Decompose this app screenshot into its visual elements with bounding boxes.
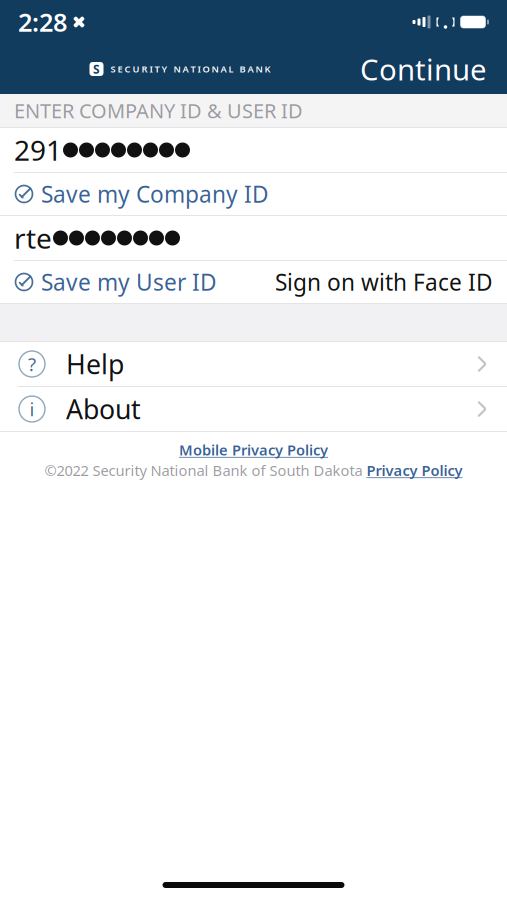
staticText: 2:28	[18, 5, 67, 39]
staticText: Save my User ID	[41, 267, 217, 297]
staticText: rte	[14, 219, 52, 257]
staticText: ENTER COMPANY ID & USER ID	[14, 97, 303, 124]
button[interactable]: Save my User ID	[0, 257, 225, 307]
staticText: Sign on with Face ID	[275, 267, 493, 297]
button[interactable]: i	[0, 387, 507, 431]
staticText: S E C U R I T Y N A T I O N A L B A N K	[110, 63, 270, 75]
button[interactable]: Continue	[350, 43, 497, 94]
staticText: Mobile Privacy Policy	[179, 440, 328, 459]
staticText: i	[29, 397, 34, 421]
staticText: ?	[28, 352, 36, 376]
staticText: Privacy Policy	[366, 460, 462, 480]
staticText: Help	[66, 346, 124, 382]
staticText: Continue	[360, 49, 487, 88]
staticText: Save my Company ID	[41, 179, 269, 209]
button[interactable]: Save my Company ID	[0, 169, 277, 219]
staticText: About	[66, 391, 141, 427]
button[interactable]: Mobile Privacy Policy	[179, 440, 328, 459]
staticText: S	[93, 61, 100, 77]
staticText: 291	[14, 131, 62, 169]
button[interactable]: Sign on with Face ID	[267, 257, 507, 307]
button[interactable]: ?	[0, 342, 507, 386]
staticText: ©2022 Security National Bank of South Da…	[44, 460, 362, 480]
button[interactable]: Privacy Policy	[366, 460, 462, 480]
